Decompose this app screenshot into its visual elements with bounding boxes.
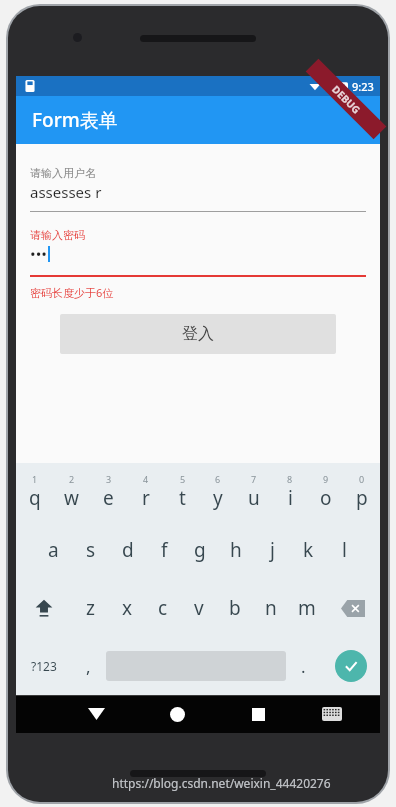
button[interactable]: z xyxy=(72,579,109,637)
button[interactable]: g xyxy=(182,521,218,579)
button[interactable]: k xyxy=(290,521,326,579)
button[interactable]: 登入 xyxy=(60,314,336,354)
button[interactable]: Backspace xyxy=(325,579,380,637)
staticText: h xyxy=(230,537,242,563)
button[interactable]: s xyxy=(72,521,109,579)
button[interactable]: b xyxy=(217,579,253,637)
staticText: r xyxy=(142,485,150,511)
staticText: d xyxy=(122,537,134,563)
staticText: 9:23 xyxy=(352,79,374,94)
staticText: x xyxy=(122,595,133,621)
staticText: t xyxy=(179,485,186,511)
staticText: b xyxy=(229,595,241,621)
button[interactable]: x xyxy=(109,579,145,637)
staticText: g xyxy=(194,537,206,563)
staticText: assesses r xyxy=(30,182,102,202)
staticText: y xyxy=(213,485,223,511)
button[interactable]: 1 xyxy=(16,463,53,521)
button[interactable]: c xyxy=(145,579,181,637)
button[interactable]: 0 xyxy=(344,463,380,521)
staticText: 3 xyxy=(106,473,112,485)
staticText: 请输入密码 xyxy=(30,228,85,242)
button[interactable]: a xyxy=(35,521,72,579)
button[interactable]: 5 xyxy=(164,463,200,521)
button[interactable]: 请输入密码 xyxy=(30,228,366,277)
staticText: p xyxy=(356,485,368,511)
staticText: w xyxy=(64,485,79,511)
button[interactable]: Recents xyxy=(218,695,299,733)
button[interactable]: 4 xyxy=(127,463,164,521)
staticText: 登入 xyxy=(182,324,214,344)
button[interactable]: v xyxy=(181,579,217,637)
button[interactable]: Enter xyxy=(335,650,367,682)
button[interactable]: 2 xyxy=(53,463,90,521)
staticText: 4 xyxy=(143,473,149,485)
button[interactable]: m xyxy=(289,579,325,637)
button[interactable]: Shift xyxy=(16,579,72,637)
staticText: DEBUG xyxy=(329,82,364,117)
staticText: e xyxy=(103,485,114,511)
button[interactable]: j xyxy=(254,521,290,579)
button[interactable]: 请输入用户名 xyxy=(30,166,366,212)
staticText: 9 xyxy=(323,473,329,485)
staticText: 请输入用户名 xyxy=(30,166,96,180)
button[interactable]: , xyxy=(71,637,106,695)
button[interactable]: f xyxy=(146,521,182,579)
button[interactable]: 7 xyxy=(236,463,272,521)
staticText: f xyxy=(161,537,168,563)
button[interactable]: Back xyxy=(56,695,137,733)
staticText: 5 xyxy=(180,473,186,485)
button[interactable]: Switch keyboard xyxy=(299,695,364,733)
staticText: j xyxy=(270,537,275,563)
staticText: o xyxy=(320,485,332,511)
staticText: u xyxy=(248,485,260,511)
button[interactable]: 8 xyxy=(272,463,308,521)
staticText: ?123 xyxy=(31,658,57,674)
staticText: Form表单 xyxy=(32,107,118,133)
staticText: 密码长度少于6位 xyxy=(30,285,114,300)
button[interactable]: 9 xyxy=(308,463,344,521)
staticText: https://blog.csdn.net/weixin_44420276 xyxy=(112,775,331,791)
staticText: . xyxy=(301,655,306,678)
staticText: , xyxy=(86,655,91,678)
staticText: i xyxy=(288,485,293,511)
staticText: l xyxy=(342,537,347,563)
staticText: 7 xyxy=(251,473,257,485)
staticText: s xyxy=(86,537,96,563)
staticText: 6 xyxy=(215,473,221,485)
button[interactable]: h xyxy=(218,521,254,579)
staticText: 0 xyxy=(359,473,365,485)
staticText: c xyxy=(158,595,168,621)
button[interactable]: d xyxy=(109,521,146,579)
staticText: 2 xyxy=(69,473,75,485)
staticText: v xyxy=(194,595,204,621)
button[interactable]: ?123 xyxy=(16,637,71,695)
staticText: n xyxy=(265,595,277,621)
staticText: z xyxy=(86,595,95,621)
button[interactable]: l xyxy=(326,521,362,579)
button[interactable]: 3 xyxy=(90,463,127,521)
staticText: 8 xyxy=(287,473,293,485)
button[interactable]: . xyxy=(286,637,321,695)
staticText: a xyxy=(48,537,59,563)
staticText: k xyxy=(303,537,314,563)
button[interactable]: Home xyxy=(137,695,218,733)
staticText: 1 xyxy=(32,473,38,485)
button[interactable]: n xyxy=(253,579,289,637)
staticText: q xyxy=(29,485,41,511)
staticText: ••• xyxy=(30,244,47,264)
button[interactable]: 6 xyxy=(200,463,236,521)
staticText: m xyxy=(298,595,316,621)
